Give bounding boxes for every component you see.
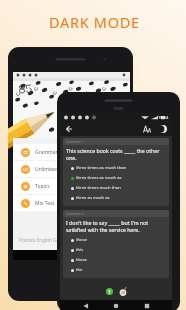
staticText: Grammar xyxy=(35,149,58,156)
button[interactable]: those xyxy=(71,235,169,245)
button[interactable]: Mix Test xyxy=(21,195,130,211)
staticText: 15:14 xyxy=(158,115,169,120)
staticText: Practice English Grammar xyxy=(19,237,74,243)
staticText: Unlimited xyxy=(35,166,58,173)
staticText: Mix Test xyxy=(35,200,55,207)
button[interactable]: Back xyxy=(81,301,91,310)
staticText: Topics xyxy=(35,183,50,190)
staticText: three as much as xyxy=(76,195,110,201)
staticText: 1 xyxy=(108,289,111,295)
staticText: I don't like to say _____ but I'm not sa… xyxy=(66,219,166,233)
staticText: Question 1 xyxy=(66,139,84,144)
button[interactable]: Home xyxy=(111,301,121,310)
staticText: this xyxy=(76,247,84,253)
button[interactable]: three times as much than xyxy=(71,163,169,173)
button[interactable]: Dark mode xyxy=(157,123,169,135)
button[interactable]: three times much than xyxy=(71,183,169,193)
button[interactable]: Unlimited xyxy=(21,161,130,177)
staticText: DARK MODE xyxy=(49,12,140,32)
button[interactable]: Recents xyxy=(142,301,152,310)
button[interactable]: 1 xyxy=(106,288,113,295)
staticText: three times as much as xyxy=(76,175,122,181)
button[interactable]: Timer xyxy=(119,288,127,296)
button[interactable]: these xyxy=(71,255,169,265)
button[interactable]: the xyxy=(71,265,169,275)
button[interactable]: this xyxy=(71,245,169,255)
button[interactable]: three as much as xyxy=(71,193,169,203)
staticText: 20 xyxy=(121,290,126,295)
staticText: these xyxy=(76,257,87,263)
button[interactable]: Grammar xyxy=(21,144,130,160)
button[interactable]: three times as much as xyxy=(71,173,169,183)
button[interactable]: Text size xyxy=(141,123,153,135)
staticText: three times as much than xyxy=(76,165,127,171)
staticText: three times much than xyxy=(76,185,121,191)
button[interactable]: Back xyxy=(63,123,75,135)
staticText: Question 2 xyxy=(66,211,84,216)
staticText: the xyxy=(76,267,83,273)
staticText: This science book costs _____ the other … xyxy=(66,147,166,161)
staticText: those xyxy=(76,237,88,243)
button[interactable]: Topics xyxy=(21,178,130,194)
